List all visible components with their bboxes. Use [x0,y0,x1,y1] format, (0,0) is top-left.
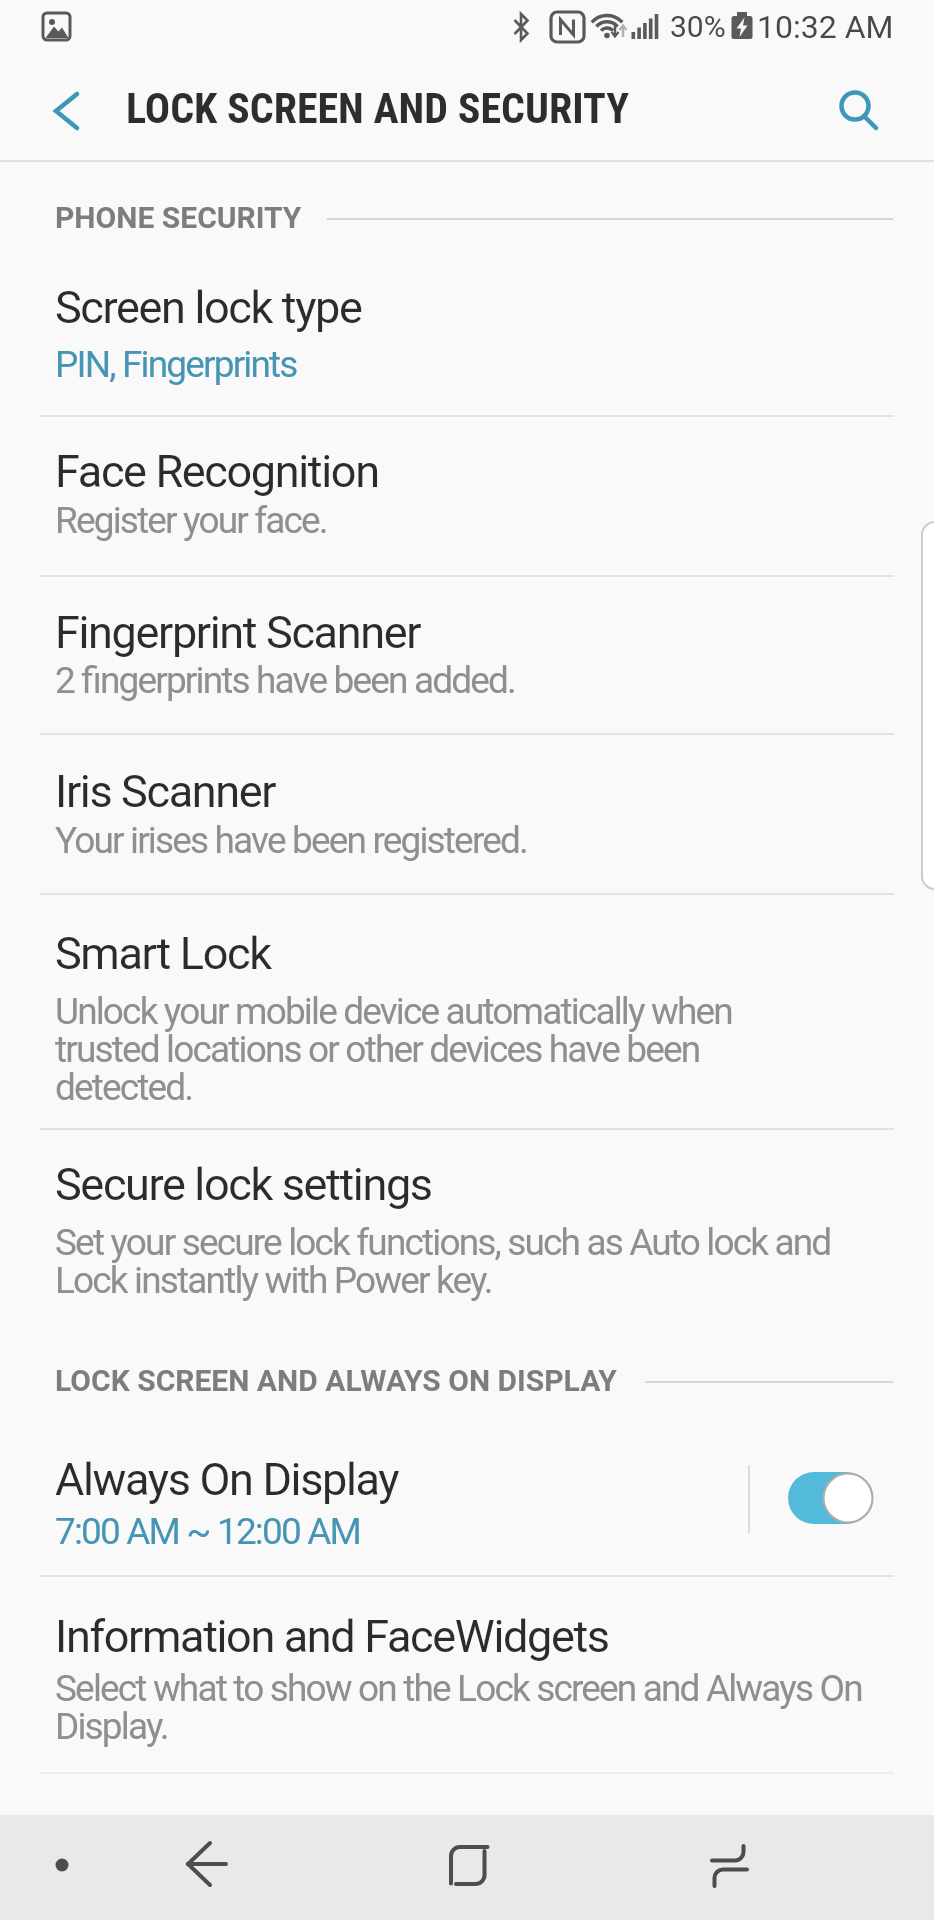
staticText: LOCK SCREEN AND ALWAYS ON DISPLAY [55,1363,617,1398]
staticText: Screen lock type [55,281,362,334]
button[interactable]: Fingerprint Scanner [0,576,934,734]
button[interactable]: Screen lock type [0,233,934,416]
staticText: Your irises have been registered. [55,819,527,862]
button[interactable] [820,70,900,150]
staticText: LOCK SCREEN AND SECURITY [126,84,629,133]
staticText: Face Recognition [55,445,379,498]
staticText: Iris Scanner [55,765,276,818]
staticText: Secure lock settings [55,1158,432,1211]
staticText: 7:00 AM ~ 12:00 AM [55,1510,360,1553]
button[interactable]: Iris Scanner [0,734,934,894]
staticText: Information and FaceWidgets [55,1610,609,1663]
staticText: 30% [670,9,726,44]
staticText: Fingerprint Scanner [55,606,421,659]
button[interactable]: Smart Lock [0,894,934,1129]
button[interactable]: Secure lock settings [0,1129,934,1319]
staticText: 2 fingerprints have been added. [55,659,515,702]
staticText: PHONE SECURITY [55,200,302,235]
button[interactable] [655,1815,805,1920]
button[interactable] [392,1815,542,1920]
staticText: Register your face. [55,499,327,542]
staticText: Always On Display [55,1453,399,1506]
staticText: Smart Lock [55,927,271,980]
button[interactable]: Face Recognition [0,416,934,576]
staticText: Set your secure lock functions, such as … [55,1221,831,1302]
button[interactable]: Information and FaceWidgets [0,1576,934,1774]
staticText: Select what to show on the Lock screen a… [55,1667,862,1748]
button[interactable] [770,1455,890,1545]
button[interactable]: Always On Display [0,1408,934,1576]
staticText: 10:32 AM [757,8,894,46]
staticText: Unlock your mobile device automatically … [55,990,732,1109]
button[interactable] [130,1815,280,1920]
staticText: PIN, Fingerprints [55,343,297,386]
button[interactable] [30,70,110,150]
